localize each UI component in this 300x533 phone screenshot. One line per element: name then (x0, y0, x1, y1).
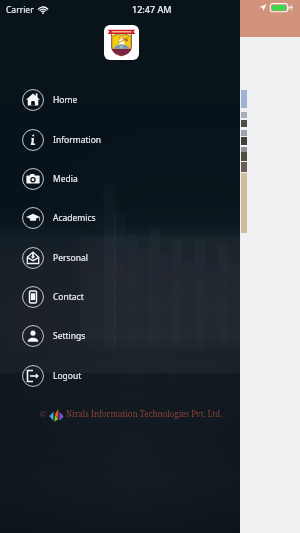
staticText: Carrier (6, 4, 34, 16)
staticText: 12:47 AM (132, 3, 172, 15)
staticText: Information (53, 134, 102, 146)
button[interactable]: Personal (0, 238, 240, 277)
staticText: Nirals Information Technologies Pvt. Ltd… (66, 408, 223, 419)
staticText: Settings (53, 330, 86, 342)
staticText: Academics (53, 212, 96, 224)
staticText: Personal (53, 252, 88, 264)
button[interactable]: Contact (0, 277, 240, 316)
button[interactable]: Home (0, 80, 240, 119)
staticText: Media (53, 173, 78, 185)
button[interactable]: Logout (0, 356, 240, 395)
button[interactable]: Media (0, 159, 240, 198)
button[interactable]: Settings (0, 316, 240, 355)
staticText: © (40, 410, 46, 420)
button[interactable]: Information (0, 120, 240, 159)
staticText: Contact (53, 291, 84, 303)
staticText: Home (53, 94, 78, 106)
button[interactable]: Academics (0, 198, 240, 237)
staticText: Logout (53, 370, 82, 382)
